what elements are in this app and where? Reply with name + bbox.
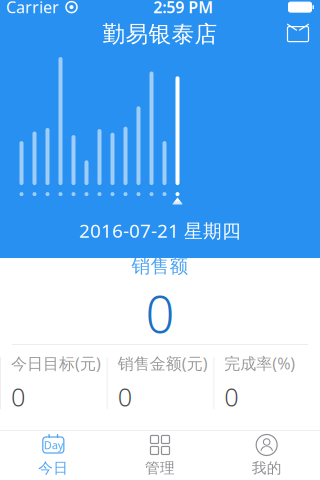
staticText: 销售金额(元) [118,353,208,374]
staticText: 0 [11,380,25,413]
staticText: 完成率(%) [224,353,295,374]
staticText: 销售额 [131,255,188,278]
button[interactable]: Day [0,431,107,480]
staticText: Day [44,438,63,452]
staticText: 2:59 PM [153,0,213,18]
staticText: 管理 [145,459,175,477]
staticText: 2016-07-21 星期四 [79,218,241,243]
button[interactable]: 我的 [213,431,320,480]
staticText: 我的 [252,459,282,477]
button[interactable]: Messages [276,17,320,51]
staticText: 勤易银泰店 [102,20,217,48]
button[interactable]: 管理 [107,431,213,480]
staticText: Carrier [6,0,59,18]
staticText: 今日目标(元) [11,353,101,374]
staticText: 0 [224,380,238,413]
staticText: 0 [118,380,132,413]
staticText: 0 [145,280,174,347]
staticText: 今日 [38,459,68,477]
